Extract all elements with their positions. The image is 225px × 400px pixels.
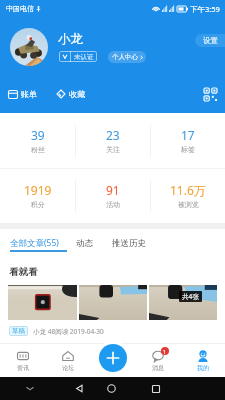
staticText: 关注 (106, 145, 120, 154)
button[interactable]: 设置 (195, 34, 225, 47)
staticText: 91 (106, 182, 120, 198)
staticText: 账单 (21, 89, 37, 99)
button[interactable]: 1919 (0, 169, 75, 222)
staticText: 积分 (31, 200, 45, 209)
staticText: 资讯 (17, 364, 29, 372)
button[interactable]: 图片1 (79, 285, 147, 320)
button[interactable]: 17 (151, 113, 225, 168)
button[interactable]: 23 (76, 113, 150, 168)
staticText: 17 (181, 127, 195, 143)
button[interactable]: 图片0 (8, 285, 77, 320)
button[interactable]: 未认证 (59, 51, 97, 62)
staticText: 下午3:59 (190, 4, 220, 14)
button[interactable]: 收藏 (56, 86, 85, 102)
button[interactable]: 1 (135, 344, 180, 377)
staticText: 粉丝 (31, 145, 45, 154)
staticText: 全部文章(55) (10, 237, 59, 249)
button[interactable]: 全部文章(55) (10, 236, 59, 250)
button[interactable]: 发布 (99, 344, 127, 372)
staticText: 1 (163, 348, 167, 355)
button[interactable]: 91 (76, 169, 150, 222)
staticText: 11.6万 (170, 182, 206, 198)
staticText: 39 (31, 127, 45, 143)
button[interactable]: 账单 (8, 86, 37, 102)
staticText: 被浏览 (178, 200, 199, 209)
staticText: 标签 (181, 145, 195, 154)
staticText: 1919 (24, 182, 52, 198)
button[interactable]: 头像 (10, 28, 48, 66)
staticText: 我的 (197, 364, 209, 372)
button[interactable]: 39 (0, 113, 75, 168)
staticText: 收藏 (69, 89, 85, 99)
staticText: 论坛 (62, 364, 74, 372)
staticText: 共4张 (182, 292, 199, 301)
staticText: 草稿 (12, 327, 25, 335)
staticText: 23 (106, 127, 120, 143)
button[interactable]: 个人中心 (108, 51, 146, 63)
staticText: 未认证 (74, 53, 94, 61)
button[interactable]: 图片2 (149, 285, 217, 320)
staticText: 动态 (76, 238, 93, 249)
staticText: 消息 (152, 364, 164, 372)
button[interactable]: 11.6万 (151, 169, 225, 222)
staticText: 活动 (106, 200, 120, 209)
staticText: 小龙 (58, 31, 83, 47)
button[interactable]: 我的 (180, 344, 225, 377)
staticText: 设置 (203, 36, 218, 45)
button[interactable]: 推送历史 (112, 236, 146, 250)
staticText: 推送历史 (112, 238, 146, 249)
button[interactable]: 动态 (76, 236, 93, 250)
staticText: 看就看 (9, 266, 38, 278)
button[interactable]: 资讯 (0, 344, 45, 377)
staticText: 个人中心 (112, 53, 138, 61)
staticText: 小龙 48阅读 2019-04-30 (33, 327, 104, 336)
button[interactable]: 二维码 (202, 86, 218, 102)
button[interactable]: 论坛 (45, 344, 90, 377)
staticText: 中国电信 (6, 4, 34, 13)
